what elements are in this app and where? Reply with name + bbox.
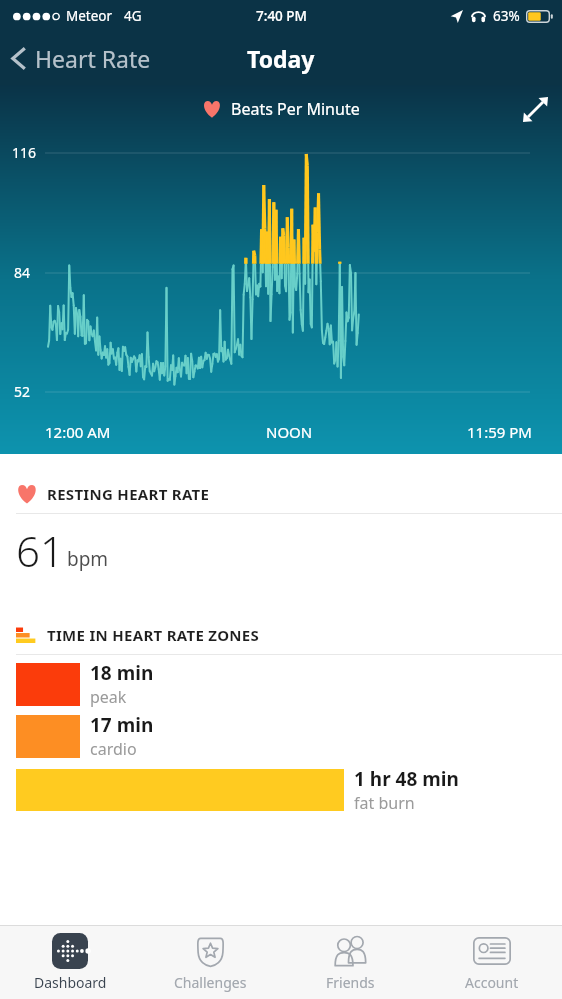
staticText: 12:00 AM: [45, 422, 111, 442]
button[interactable]: 18 min: [0, 660, 562, 708]
staticText: 11:59 PM: [467, 422, 532, 442]
staticText: 63%: [493, 7, 520, 25]
button[interactable]: 1 hr 48 min: [0, 766, 562, 814]
staticText: Today: [247, 43, 315, 74]
button[interactable]: Challenges: [140, 926, 280, 999]
button[interactable]: Dashboard: [0, 926, 140, 999]
staticText: 7:40 PM: [256, 7, 307, 25]
staticText: 4G: [124, 7, 142, 25]
staticText: Challenges: [174, 973, 247, 992]
staticText: Heart Rate: [35, 43, 151, 74]
staticText: Account: [465, 973, 519, 992]
staticText: Dashboard: [34, 973, 107, 992]
staticText: NOON: [266, 422, 313, 442]
button[interactable]: Account: [421, 926, 562, 999]
staticText: Meteor: [66, 7, 113, 25]
staticText: RESTING HEART RATE: [47, 484, 210, 504]
staticText: 1 hr 48 min: [354, 766, 459, 792]
staticText: Beats Per Minute: [231, 98, 360, 120]
button[interactable]: 61: [0, 514, 562, 585]
staticText: fat burn: [354, 792, 415, 814]
staticText: 61: [16, 522, 64, 579]
staticText: 116: [12, 143, 37, 162]
staticText: 18 min: [90, 660, 154, 686]
staticText: bpm: [67, 546, 109, 572]
staticText: 17 min: [90, 712, 154, 738]
button[interactable]: 17 min: [0, 712, 562, 760]
button[interactable]: Friends: [280, 926, 421, 999]
staticText: 52: [14, 382, 31, 401]
staticText: TIME IN HEART RATE ZONES: [47, 625, 260, 645]
staticText: 84: [14, 263, 31, 282]
staticText: cardio: [90, 738, 137, 760]
button[interactable]: Expand chart: [509, 85, 562, 134]
staticText: peak: [90, 686, 127, 708]
button[interactable]: Heart Rate: [0, 35, 165, 82]
staticText: Friends: [326, 973, 375, 992]
